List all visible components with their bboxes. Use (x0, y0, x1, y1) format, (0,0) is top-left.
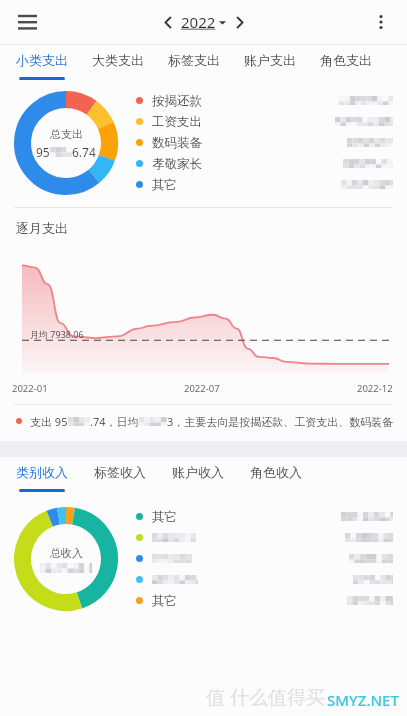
button[interactable]: More options (365, 6, 397, 38)
staticText: 标签支出 (168, 52, 220, 68)
staticText: 2022-12 (357, 382, 393, 395)
button[interactable]: 工资支出 (136, 111, 405, 132)
button[interactable]: 孝敬家长 (136, 153, 405, 174)
staticText: 大类支出 (92, 52, 144, 68)
staticText: 孝敬家长 (152, 156, 202, 172)
staticText: 账户收入 (172, 464, 224, 480)
staticText: 角色收入 (250, 464, 302, 480)
button[interactable]: 小类支出 (16, 45, 92, 80)
staticText: .74，日均 (90, 414, 139, 429)
staticText: 值 什么值得买 (206, 684, 325, 710)
button[interactable]: 其它 (136, 590, 405, 611)
button[interactable] (136, 569, 405, 590)
staticText: 2022 (181, 12, 216, 32)
button[interactable]: 数码装备 (136, 132, 405, 153)
button[interactable]: 2022 (181, 12, 226, 32)
staticText: 其它 (152, 177, 177, 193)
staticText: 角色支出 (320, 52, 372, 68)
button[interactable] (136, 548, 405, 569)
staticText: 标签收入 (94, 464, 146, 480)
button[interactable]: Previous year (155, 9, 181, 35)
staticText: 工资支出 (152, 114, 202, 130)
button[interactable]: 账户收入 (172, 457, 250, 492)
button[interactable]: 其它 (136, 174, 405, 195)
button[interactable]: 标签收入 (94, 457, 172, 492)
staticText: 3，主要去向是按揭还款、工资支出、数码装备 (167, 414, 394, 429)
staticText: 其它 (152, 509, 177, 525)
button[interactable]: 角色支出 (320, 45, 396, 80)
button[interactable]: 类别收入 (16, 457, 94, 492)
staticText: 月均 7938.06 (30, 328, 84, 340)
button[interactable]: Menu (10, 5, 44, 39)
staticText: SMYZ.NET (327, 690, 399, 710)
staticText: 支出 95 (30, 414, 68, 429)
button[interactable]: 账户支出 (244, 45, 320, 80)
staticText: 6.74 (72, 144, 96, 160)
staticText: 按揭还款 (152, 93, 202, 109)
staticText: 95 (36, 144, 50, 160)
button[interactable]: 大类支出 (92, 45, 168, 80)
button[interactable]: 其它 (136, 506, 405, 527)
staticText: 总收入 (50, 546, 83, 560)
staticText: 2022-01 (12, 382, 48, 395)
staticText: 数码装备 (152, 135, 202, 151)
button[interactable] (136, 527, 405, 548)
staticText: 小类支出 (16, 52, 68, 68)
button[interactable]: 支出 95 (0, 405, 407, 437)
staticText: 2022-07 (184, 382, 220, 395)
button[interactable]: 按揭还款 (136, 90, 405, 111)
button[interactable]: 角色收入 (250, 457, 328, 492)
staticText: 类别收入 (16, 464, 68, 480)
button[interactable]: Next year (226, 9, 252, 35)
staticText: 账户支出 (244, 52, 296, 68)
button[interactable]: 标签支出 (168, 45, 244, 80)
staticText: 逐月支出 (16, 220, 68, 236)
staticText: 总支出 (50, 127, 83, 141)
staticText: 其它 (152, 593, 177, 609)
